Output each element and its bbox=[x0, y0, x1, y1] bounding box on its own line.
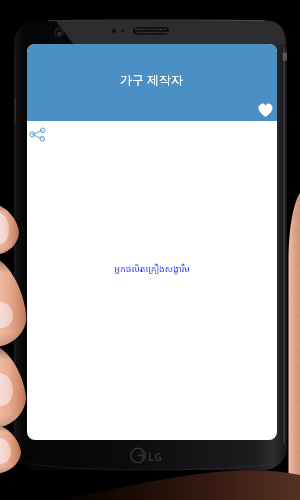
staticText: LG bbox=[148, 449, 162, 464]
button[interactable]: Favorite bbox=[254, 99, 276, 121]
staticText: អ្នកផលិតគ្រឿងសង្ខារឹម bbox=[114, 262, 190, 274]
button[interactable]: Share bbox=[27, 124, 47, 144]
staticText: 가구 제작자 bbox=[120, 71, 184, 87]
